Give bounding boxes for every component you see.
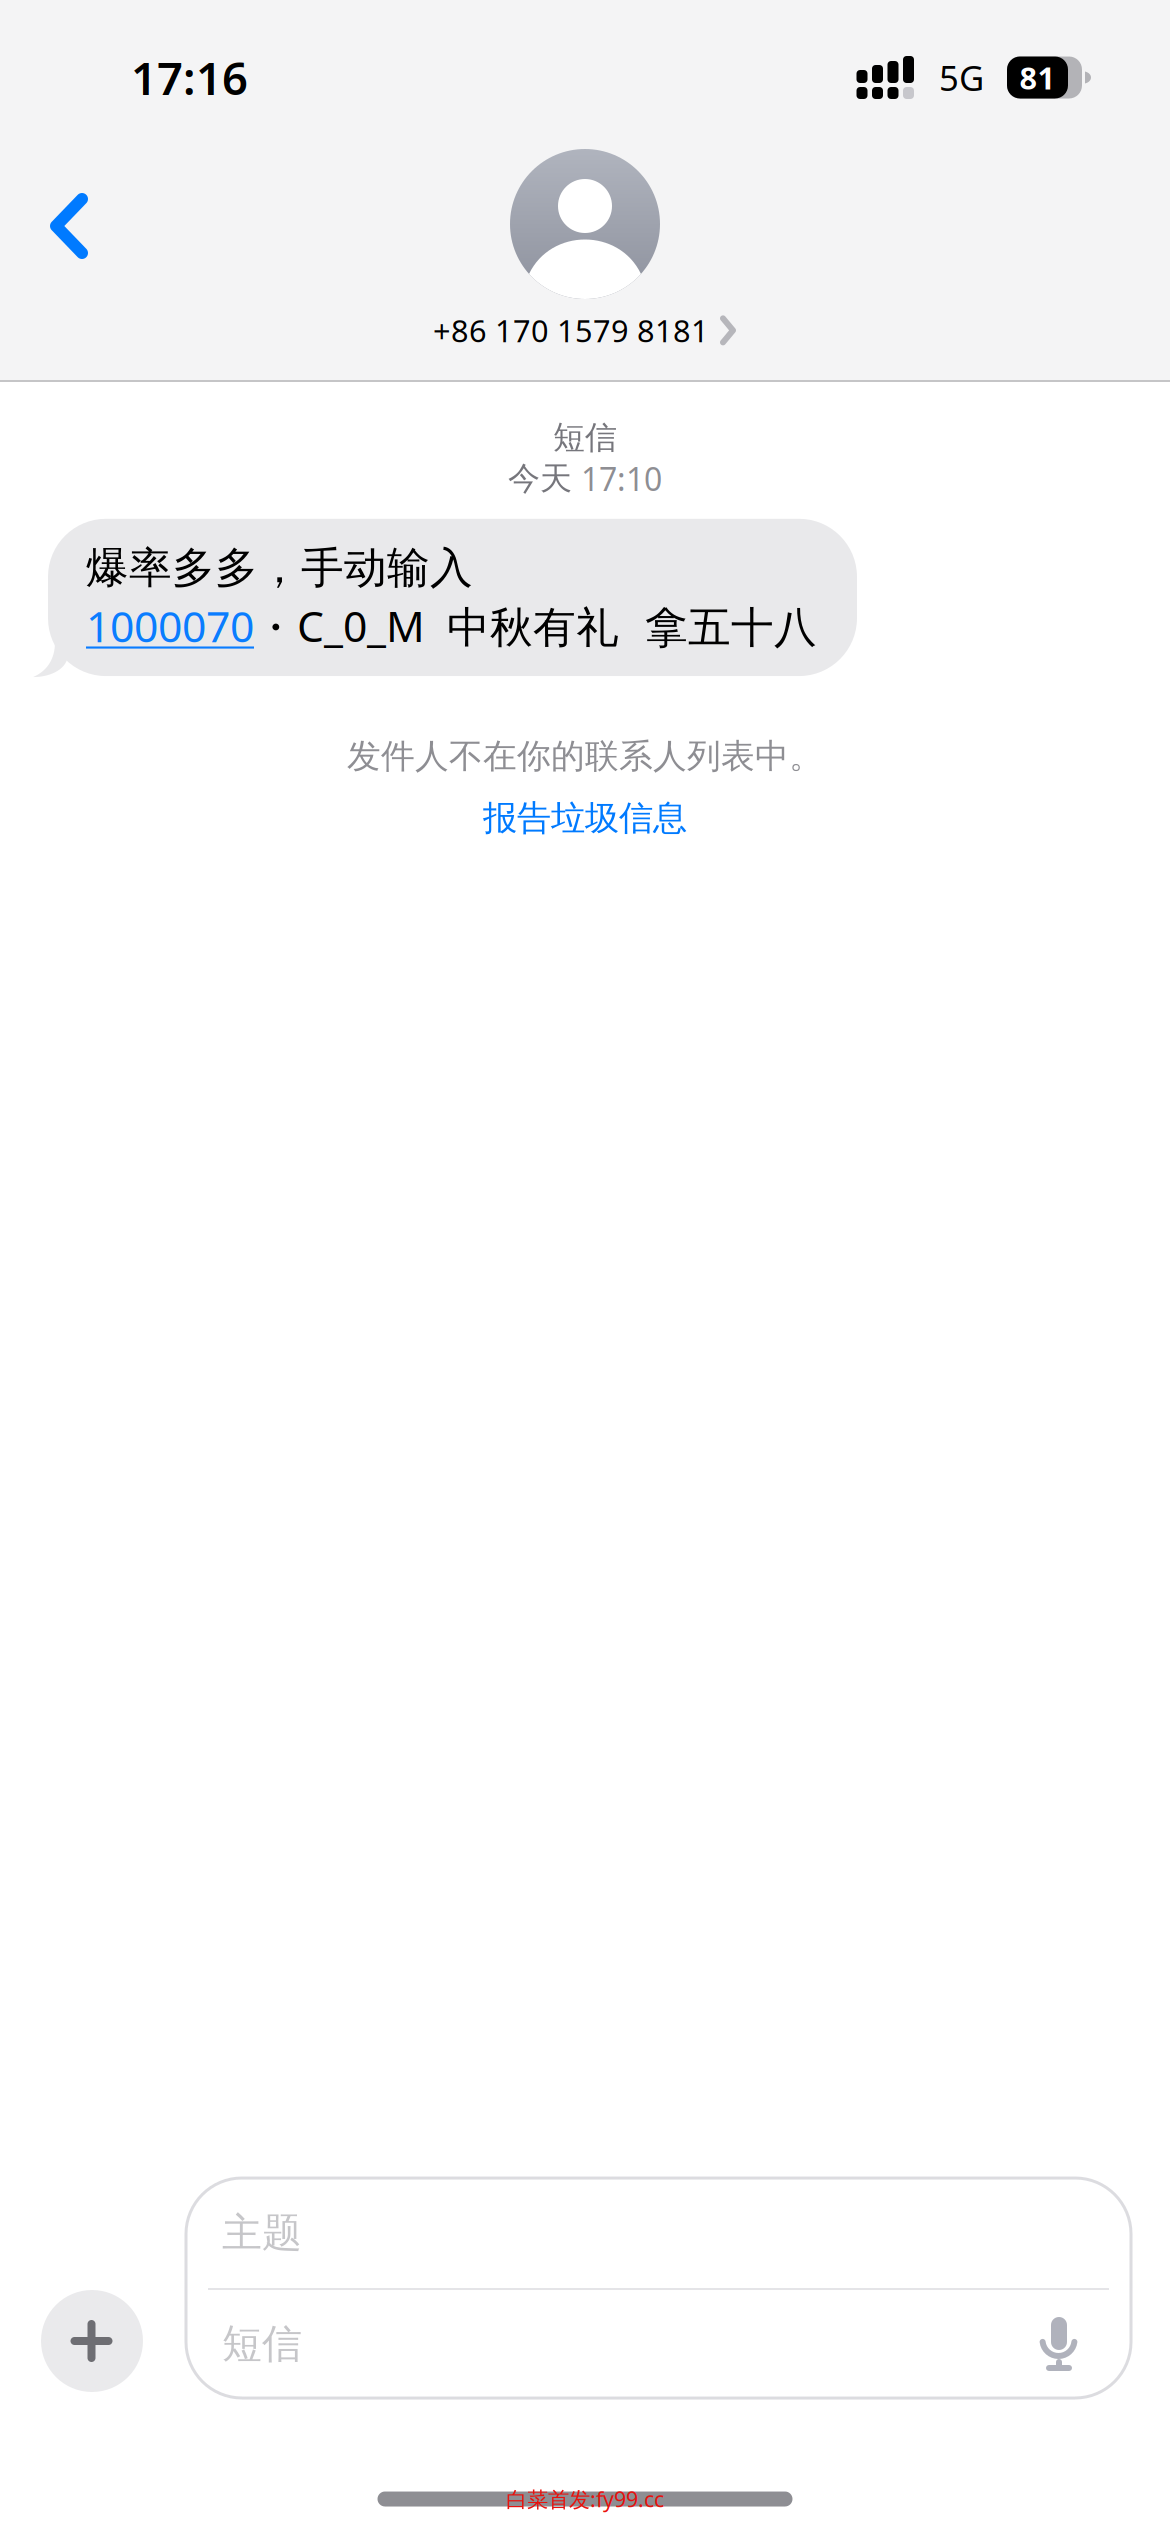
- staticText: 主题: [222, 2208, 302, 2257]
- staticText: 短信: [222, 2319, 302, 2368]
- button[interactable]: Back: [0, 153, 139, 299]
- button[interactable]: +86 170 1579 8181 contact details: [433, 149, 737, 351]
- staticText: 17:16: [131, 47, 248, 108]
- staticText: 发件人不在你的联系人列表中。: [347, 735, 823, 778]
- button[interactable]: Add attachment: [41, 2290, 143, 2392]
- staticText: 1000070: [86, 597, 254, 654]
- staticText: 81: [1019, 57, 1055, 98]
- staticText: 报告垃圾信息: [483, 797, 687, 840]
- staticText: +86 170 1579 8181: [433, 310, 709, 351]
- staticText: ・C_0_M 中秋有礼 拿五十八: [254, 597, 817, 654]
- staticText: 5G: [939, 54, 984, 100]
- staticText: 爆率多多，手动输入: [86, 542, 473, 594]
- staticText: 短信: [553, 418, 617, 457]
- staticText: 今天: [508, 459, 572, 498]
- button[interactable]: 报告垃圾信息: [463, 778, 707, 844]
- staticText: 17:10: [581, 457, 662, 500]
- staticText: 白菜首发:fy99.cc: [506, 2484, 664, 2514]
